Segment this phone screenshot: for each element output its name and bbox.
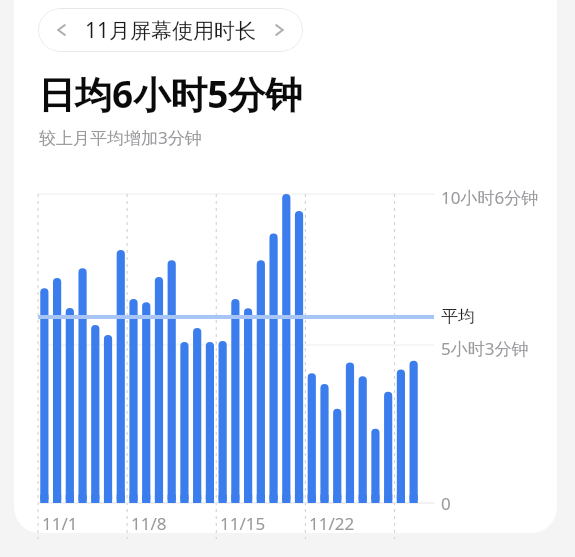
staticText: 较上月平均增加3分钟 [39,126,202,149]
staticText: 5小时3分钟 [441,337,529,360]
staticText: 11/1 [42,512,78,535]
staticText: 日均6小时5分钟 [38,68,303,119]
button[interactable]: Next month [257,8,303,52]
staticText: 11/15 [220,512,266,535]
staticText: 0 [441,492,451,515]
staticText: 10小时6分钟 [441,186,539,209]
staticText: 平均 [441,306,475,327]
staticText: 11月屏幕使用时长 [85,16,257,45]
button[interactable]: Previous month [38,8,303,52]
button[interactable]: Previous month [38,8,84,52]
staticText: 11/8 [131,512,167,535]
staticText: 11/22 [309,512,355,535]
